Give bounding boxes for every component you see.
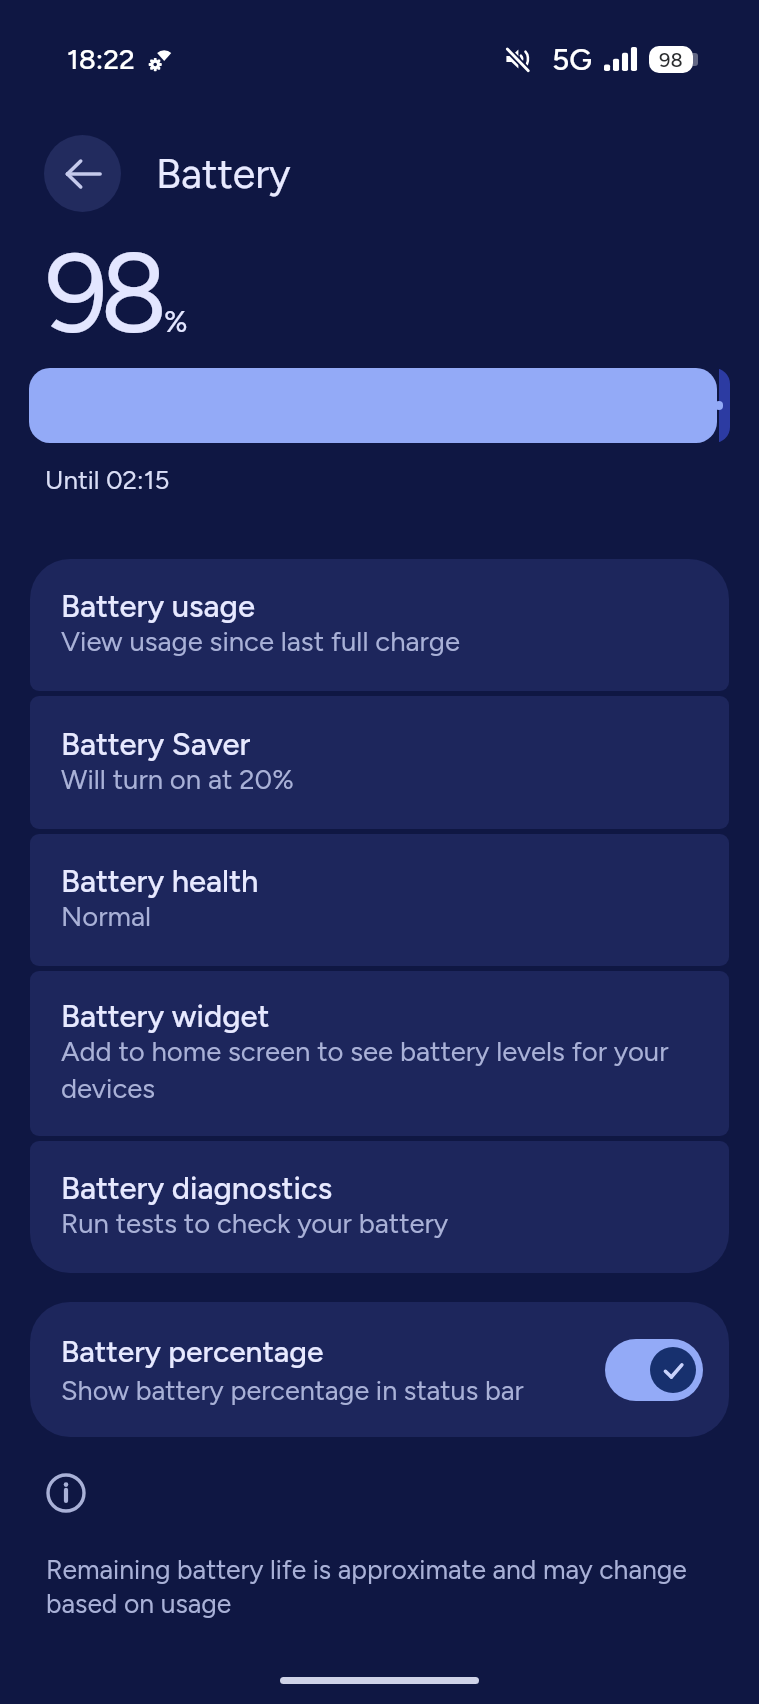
staticText: Battery percentage	[61, 1333, 324, 1369]
staticText: %	[164, 303, 188, 339]
staticText: Until 02:15	[45, 464, 170, 495]
staticText: Normal	[61, 900, 152, 933]
staticText: Remaining battery life is approximate an…	[46, 1554, 719, 1620]
button[interactable]: Battery percentage	[30, 1302, 729, 1437]
button[interactable]: Battery usage	[30, 559, 729, 691]
staticText: Battery	[156, 149, 291, 198]
button[interactable]: Back	[44, 135, 121, 212]
staticText: Show battery percentage in status bar	[61, 1374, 524, 1406]
staticText: View usage since last full charge	[61, 625, 460, 658]
button[interactable]: Battery diagnostics	[30, 1141, 729, 1273]
staticText: 5G	[552, 41, 592, 77]
staticText: Battery health	[61, 863, 259, 900]
staticText: Battery diagnostics	[61, 1170, 333, 1207]
button[interactable]: Battery health	[30, 834, 729, 966]
staticText: 98	[659, 48, 683, 72]
button[interactable]: Battery widget	[30, 971, 729, 1136]
staticText: Battery usage	[61, 588, 255, 625]
staticText: Will turn on at 20%	[61, 763, 294, 796]
staticText: Battery Saver	[61, 726, 251, 763]
staticText: 18:22	[67, 42, 135, 76]
staticText: 98	[45, 227, 160, 360]
staticText: Run tests to check your battery	[61, 1207, 449, 1240]
staticText: Battery widget	[61, 998, 270, 1035]
button[interactable]: Battery Saver	[30, 696, 729, 829]
other: Battery percentage toggle	[605, 1339, 703, 1401]
staticText: Add to home screen to see battery levels…	[61, 1035, 698, 1105]
